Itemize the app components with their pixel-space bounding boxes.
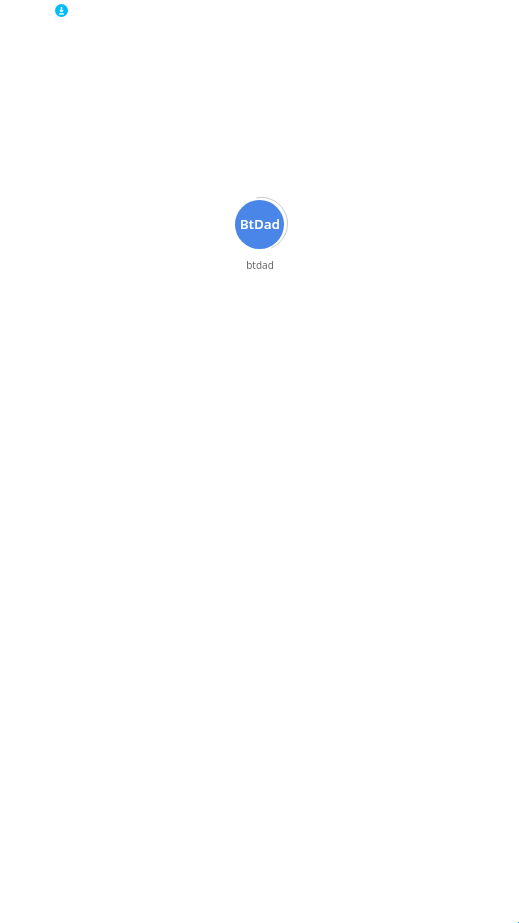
button[interactable]: Download — [55, 4, 68, 17]
button[interactable]: BtDad — [207, 196, 311, 272]
staticText: BtDad — [240, 215, 281, 233]
staticText: btdad — [246, 258, 274, 272]
